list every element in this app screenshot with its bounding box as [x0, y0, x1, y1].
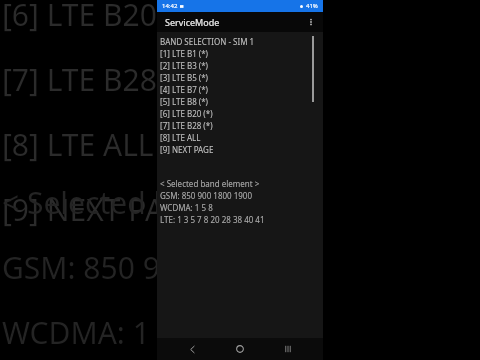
staticText: [4] LTE B7 (*): [160, 84, 208, 95]
staticText: [7] LTE B28 (: [2, 59, 174, 100]
staticText: GSM: 850 900 1800 1900: [160, 190, 252, 201]
staticText: [7] LTE B28 (*): [160, 120, 213, 131]
staticText: [9] NEXT PAG: [2, 189, 186, 230]
button[interactable]: Back: [179, 338, 205, 360]
button[interactable]: [2] LTE B3 (*): [160, 59, 323, 71]
staticText: < Selected band element >: [160, 178, 260, 189]
staticText: BAND SELECTION - SIM 1: [160, 36, 255, 47]
button[interactable]: [3] LTE B5 (*): [160, 71, 323, 83]
staticText: [3] LTE B5 (*): [160, 72, 208, 83]
staticText: [2] LTE B3 (*): [160, 60, 208, 71]
button[interactable]: [5] LTE B8 (*): [160, 95, 323, 107]
button[interactable]: [7] LTE B28 (*): [160, 119, 323, 131]
button[interactable]: Home: [227, 338, 253, 360]
staticText: [8] LTE ALL: [160, 132, 201, 143]
staticText: GSM: 850 900: [2, 247, 195, 288]
staticText: ServiceMode: [165, 16, 220, 28]
button[interactable]: [4] LTE B7 (*): [160, 83, 323, 95]
button[interactable]: [6] LTE B20 (*): [160, 107, 323, 119]
staticText: [5] LTE B8 (*): [160, 96, 208, 107]
staticText: WCDMA: 1 5 8: [2, 312, 200, 353]
staticText: [6] LTE B20 (*): [160, 108, 213, 119]
button[interactable]: [9] NEXT PAGE: [160, 143, 323, 155]
staticText: 41%: [306, 2, 318, 10]
button[interactable]: BAND SELECTION - SIM 1: [160, 35, 323, 47]
staticText: WCDMA: 1 5 8: [160, 202, 213, 213]
staticText: LTE: 1 3 5 7 8 20 28 38 40 41: [160, 214, 265, 225]
staticText: [8] LTE ALL: [2, 124, 154, 165]
button[interactable]: More options: [303, 14, 319, 30]
button[interactable]: [8] LTE ALL: [160, 131, 323, 143]
button[interactable]: Recent apps: [275, 338, 301, 360]
staticText: < Selected ba: [2, 182, 189, 223]
button[interactable]: [1] LTE B1 (*): [160, 47, 323, 59]
staticText: [1] LTE B1 (*): [160, 48, 208, 59]
staticText: [6] LTE B20 (: [2, 0, 174, 35]
staticText: 14:42: [162, 2, 178, 10]
staticText: [9] NEXT PAGE: [160, 144, 214, 155]
